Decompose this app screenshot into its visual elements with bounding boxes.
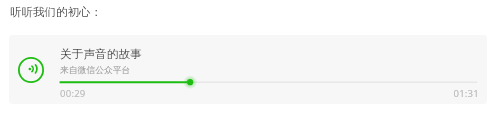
staticText: 听听我们的初心： (10, 5, 102, 19)
button[interactable]: Play audio (18, 57, 44, 83)
staticText: 01:31 (429, 87, 479, 100)
button[interactable]: Play audio (9, 35, 487, 104)
staticText: 关于声音的故事 (60, 47, 142, 62)
staticText: 来自微信公众平台 (60, 65, 131, 76)
staticText: 00:29 (60, 87, 86, 100)
